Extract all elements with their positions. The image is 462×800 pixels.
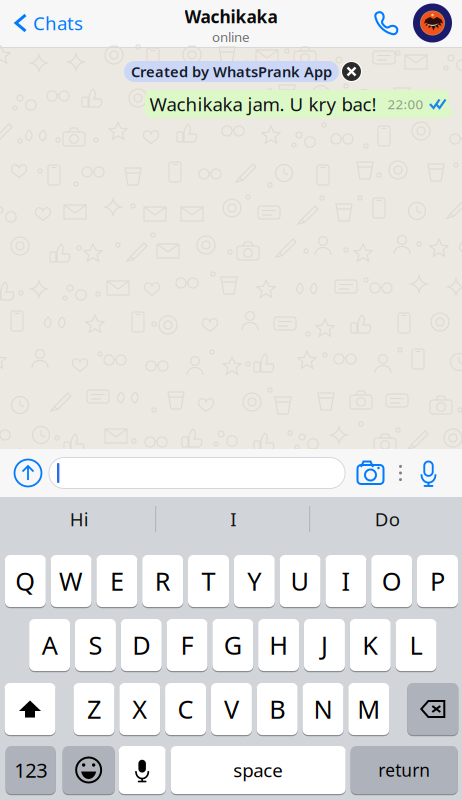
staticText: M [357, 692, 380, 726]
button[interactable]: Camera [356, 449, 384, 497]
button[interactable]: R [142, 555, 183, 607]
staticText: C [178, 692, 194, 726]
button[interactable]: L [396, 619, 437, 671]
button[interactable]: Contact info [413, 0, 452, 46]
button[interactable]: W [51, 555, 92, 607]
button[interactable]: V [211, 683, 252, 735]
staticText: Y [247, 564, 261, 598]
staticText: Wachikaka [184, 5, 277, 28]
staticText: online [212, 28, 250, 46]
staticText: Do [375, 507, 400, 531]
button[interactable]: Voice message [418, 449, 438, 497]
staticText: R [155, 564, 171, 598]
button[interactable]: D [121, 619, 162, 671]
button[interactable]: Dictation [119, 746, 166, 794]
staticText: S [88, 628, 102, 662]
button[interactable]: G [212, 619, 253, 671]
button[interactable]: Y [234, 555, 275, 607]
button[interactable]: U [280, 555, 321, 607]
button[interactable]: X [119, 683, 160, 735]
staticText: P [430, 564, 445, 598]
button[interactable]: Do [310, 497, 462, 541]
button[interactable]: Z [73, 683, 114, 735]
button[interactable]: Attach [14, 449, 41, 497]
button[interactable]: Call [365, 0, 408, 46]
button[interactable]: Delete [407, 683, 458, 735]
staticText: H [269, 628, 288, 662]
button[interactable]: J [304, 619, 345, 671]
button[interactable]: O [371, 555, 412, 607]
staticText: L [410, 628, 423, 662]
staticText: A [42, 628, 58, 662]
button[interactable]: return [351, 746, 458, 794]
staticText: 22:00 [387, 95, 423, 113]
staticText: Z [87, 692, 101, 726]
button[interactable]: I [325, 555, 366, 607]
button[interactable]: K [350, 619, 391, 671]
staticText: Hi [70, 507, 89, 531]
staticText: E [110, 564, 124, 598]
staticText: Chats [33, 11, 83, 35]
staticText: X [132, 692, 147, 726]
staticText: J [321, 628, 328, 662]
button[interactable]: A [29, 619, 70, 671]
staticText: D [132, 628, 150, 662]
button[interactable]: Emoji keyboard [63, 746, 115, 794]
staticText: Wachikaka jam. U kry bac! [149, 92, 376, 116]
staticText: Q [15, 564, 35, 598]
staticText: N [313, 692, 332, 726]
staticText: return [378, 758, 430, 781]
staticText: B [269, 692, 285, 726]
staticText: I [341, 564, 350, 598]
button[interactable]: Q [5, 555, 46, 607]
staticText: I [230, 507, 236, 531]
staticText: Created by WhatsPrank App [131, 62, 332, 81]
button[interactable]: P [417, 555, 458, 607]
button[interactable]: Shift [4, 683, 55, 735]
button[interactable]: S [75, 619, 116, 671]
staticText: space [233, 758, 283, 782]
button[interactable]: Dismiss banner [341, 61, 362, 82]
button[interactable]: M [348, 683, 389, 735]
staticText: T [201, 564, 215, 598]
button[interactable]: C [165, 683, 206, 735]
button[interactable]: T [188, 555, 229, 607]
button[interactable]: space [171, 746, 346, 794]
button[interactable]: 123 [6, 746, 56, 794]
button[interactable]: More options [393, 449, 407, 497]
staticText: K [362, 628, 378, 662]
button[interactable]: E [96, 555, 137, 607]
staticText: F [180, 628, 193, 662]
staticText: V [224, 692, 239, 726]
staticText: O [382, 564, 402, 598]
staticText: 123 [14, 757, 47, 783]
button[interactable]: Hi [2, 497, 156, 541]
button[interactable]: Chats [0, 0, 91, 46]
button[interactable]: F [166, 619, 207, 671]
button[interactable]: H [258, 619, 299, 671]
button[interactable]: N [302, 683, 343, 735]
button[interactable]: B [257, 683, 298, 735]
button[interactable]: I [156, 497, 310, 541]
staticText: W [59, 564, 83, 598]
staticText: G [224, 628, 242, 662]
staticText: U [291, 564, 310, 598]
